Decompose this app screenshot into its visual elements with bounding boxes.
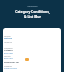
staticText: Condition bbox=[4, 47, 13, 50]
button[interactable]: Sub list bbox=[4, 55, 13, 60]
staticText: Sub list bbox=[4, 55, 11, 58]
staticText: Blur items bbox=[4, 52, 13, 55]
staticText: Category bbox=[4, 65, 13, 68]
staticText: Category Conditions, & List Blur bbox=[15, 9, 50, 19]
staticText: Developer bbox=[27, 5, 38, 8]
staticText: Show list blur bbox=[4, 67, 18, 70]
staticText: Blur values bbox=[4, 57, 13, 60]
button[interactable]: Developer conditions bbox=[4, 61, 19, 69]
staticText: Developer conditions bbox=[4, 61, 19, 64]
button[interactable]: Status badge bbox=[25, 58, 29, 61]
staticText: Section bbox=[4, 35, 11, 38]
staticText: Lorem ip bbox=[4, 41, 12, 44]
button[interactable]: Condition bbox=[4, 47, 13, 54]
button[interactable]: Section bbox=[4, 35, 12, 39]
staticText: Materials bbox=[4, 37, 12, 40]
staticText: Category list bbox=[4, 49, 13, 52]
